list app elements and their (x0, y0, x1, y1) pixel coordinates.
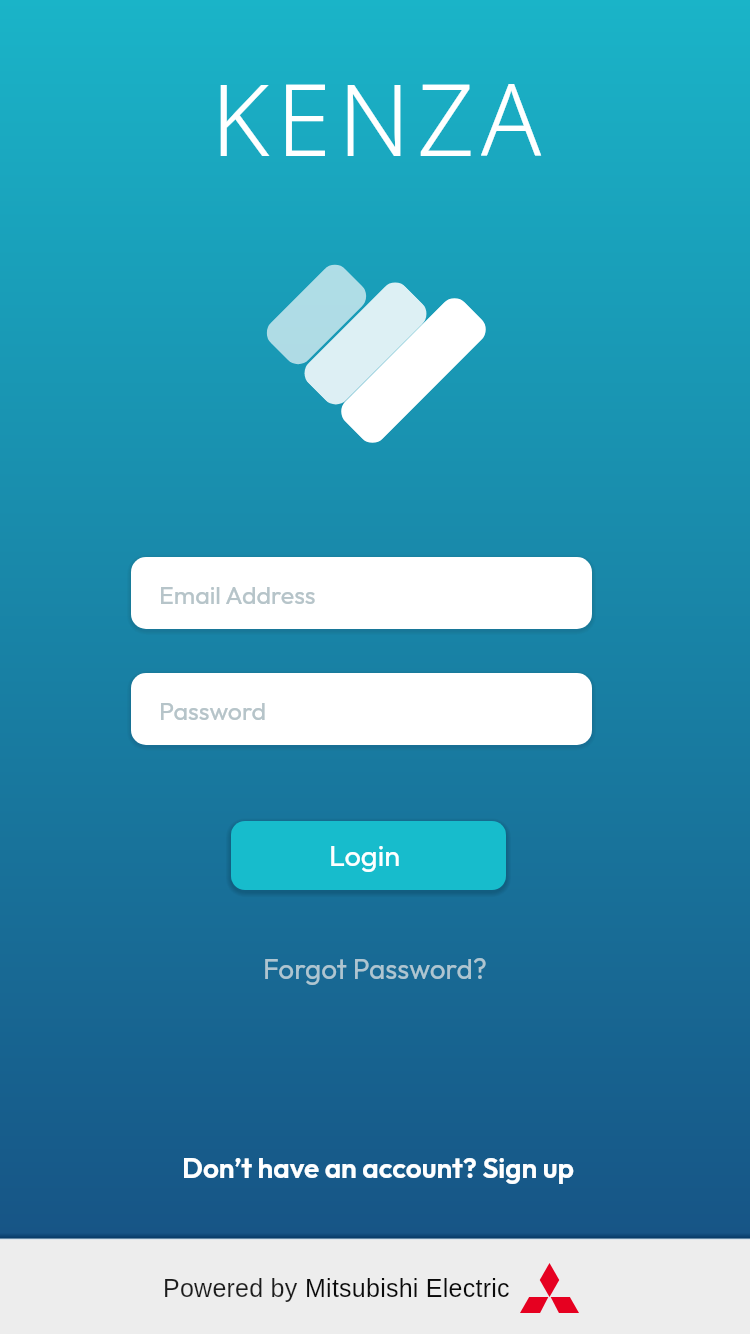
button[interactable]: Password (131, 673, 592, 745)
button[interactable]: Forgot Password? (263, 951, 487, 986)
other: Mitsubishi Electric (520, 1263, 579, 1313)
staticText: Password (159, 695, 267, 727)
staticText: Login (329, 837, 401, 874)
staticText: Email Address (159, 579, 316, 611)
button[interactable]: Login (231, 821, 506, 890)
staticText: KENZA (211, 50, 549, 185)
staticText: Powered by (163, 1274, 305, 1302)
button[interactable]: Don’t have an account? Sign up (182, 1150, 574, 1185)
button[interactable]: Email Address (131, 557, 592, 629)
staticText: Mitsubishi Electric (305, 1274, 510, 1302)
